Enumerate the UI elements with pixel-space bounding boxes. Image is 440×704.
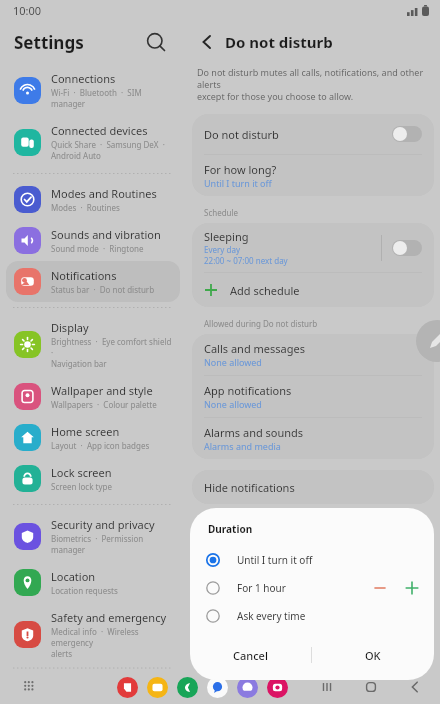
button[interactable]: App 2 xyxy=(177,677,198,698)
staticText: Duration xyxy=(208,522,253,536)
button[interactable]: Edit xyxy=(416,320,440,362)
button[interactable] xyxy=(392,240,422,256)
staticText: Home screen xyxy=(51,424,120,439)
button[interactable]: Sleeping xyxy=(192,223,434,272)
staticText: Wallpapers · Colour palette xyxy=(51,399,157,410)
staticText: Hide notifications xyxy=(204,480,295,495)
button[interactable]: Security and privacy xyxy=(6,510,180,562)
staticText: Biometrics · Permission manager xyxy=(51,533,172,555)
staticText: Until I turn it off xyxy=(204,177,272,189)
staticText: Screen lock type xyxy=(51,481,112,492)
staticText: Sound mode · Ringtone xyxy=(51,243,144,254)
staticText: Connected devices xyxy=(51,123,148,138)
staticText: Wallpaper and style xyxy=(51,383,153,398)
staticText: Schedule xyxy=(204,207,239,218)
button[interactable]: Decrease xyxy=(370,578,390,598)
button[interactable]: Home screen xyxy=(6,417,180,458)
button[interactable]: Recents xyxy=(316,676,338,698)
staticText: None allowed xyxy=(204,398,262,410)
button[interactable]: App 0 xyxy=(117,677,138,698)
button[interactable]: Search xyxy=(142,28,170,56)
staticText: Allowed during Do not disturb xyxy=(204,318,318,329)
button[interactable] xyxy=(392,126,422,142)
staticText: Cancel xyxy=(233,648,268,663)
staticText: Sleeping xyxy=(204,229,249,244)
button[interactable]: App notifications xyxy=(192,376,434,417)
button[interactable]: For how long? xyxy=(192,155,434,196)
button[interactable]: Location xyxy=(6,562,180,603)
staticText: Every day xyxy=(204,244,240,255)
staticText: Until I turn it off xyxy=(237,553,422,567)
staticText: 10:00 xyxy=(13,3,42,18)
staticText: Location requests xyxy=(51,585,118,596)
button[interactable]: Display xyxy=(6,313,180,376)
staticText: Location xyxy=(51,569,96,584)
button[interactable]: Wallpaper and style xyxy=(6,376,180,417)
staticText: Add schedule xyxy=(230,283,300,298)
staticText: Settings xyxy=(14,31,84,54)
button[interactable]: Connected devices xyxy=(6,116,180,168)
staticText: OK xyxy=(365,648,381,663)
button[interactable]: Modes and Routines xyxy=(6,179,180,220)
staticText: Medical info · Wireless emergency alerts xyxy=(51,626,172,659)
staticText: Do not disturb mutes all calls, notifica… xyxy=(197,66,440,102)
staticText: Alarms and sounds xyxy=(204,425,304,440)
staticText: Alarms and media xyxy=(204,440,281,452)
button[interactable]: App 3 xyxy=(207,677,228,698)
button[interactable]: App 4 xyxy=(237,677,258,698)
button[interactable]: Increase xyxy=(402,578,422,598)
staticText: Wi-Fi · Bluetooth · SIM manager xyxy=(51,87,172,109)
button[interactable]: Hide notifications xyxy=(192,470,434,504)
staticText: Quick Share · Samsung DeX · Android Auto xyxy=(51,139,165,161)
staticText: For 1 hour xyxy=(237,581,370,595)
staticText: App notifications xyxy=(204,383,292,398)
staticText: Display xyxy=(51,320,89,335)
button[interactable]: Alarms and sounds xyxy=(192,418,434,459)
staticText: Status bar · Do not disturb xyxy=(51,284,155,295)
button[interactable]: Ask every time xyxy=(190,602,434,630)
button[interactable]: Connections xyxy=(6,64,180,116)
staticText: Connections xyxy=(51,71,116,86)
button[interactable]: Notifications xyxy=(6,261,180,302)
staticText: Calls and messages xyxy=(204,341,305,356)
staticText: Modes · Routines xyxy=(51,202,120,213)
staticText: Do not disturb xyxy=(204,127,392,142)
staticText: 22:00 ~ 07:00 next day xyxy=(204,255,288,266)
button[interactable]: Until I turn it off xyxy=(190,546,434,574)
button[interactable]: App 1 xyxy=(147,677,168,698)
button[interactable]: Lock screen xyxy=(6,458,180,499)
staticText: Modes and Routines xyxy=(51,186,157,201)
staticText: Lock screen xyxy=(51,465,112,480)
staticText: Brightness · Eye comfort shield · Naviga… xyxy=(51,336,172,369)
button[interactable]: Sounds and vibration xyxy=(6,220,180,261)
button[interactable]: Safety and emergency xyxy=(6,603,180,666)
staticText: None allowed xyxy=(204,356,262,368)
button[interactable]: Do not disturb xyxy=(192,114,434,154)
staticText: Do not disturb xyxy=(225,32,333,52)
button[interactable]: Cancel xyxy=(190,638,311,672)
staticText: Layout · App icon badges xyxy=(51,440,150,451)
button[interactable]: For 1 hour xyxy=(190,574,434,602)
staticText: Ask every time xyxy=(237,609,422,623)
staticText: Safety and emergency xyxy=(51,610,167,625)
button[interactable]: Back xyxy=(404,676,426,698)
button[interactable]: Calls and messages xyxy=(192,334,434,375)
button[interactable]: OK xyxy=(312,638,434,672)
staticText: For how long? xyxy=(204,162,277,177)
button[interactable]: Back xyxy=(194,29,220,55)
staticText: Notifications xyxy=(51,268,117,283)
button[interactable]: Home xyxy=(360,676,382,698)
button[interactable]: App 5 xyxy=(267,677,288,698)
button[interactable]: Add schedule xyxy=(192,273,434,307)
staticText: Security and privacy xyxy=(51,517,155,532)
staticText: Sounds and vibration xyxy=(51,227,161,242)
